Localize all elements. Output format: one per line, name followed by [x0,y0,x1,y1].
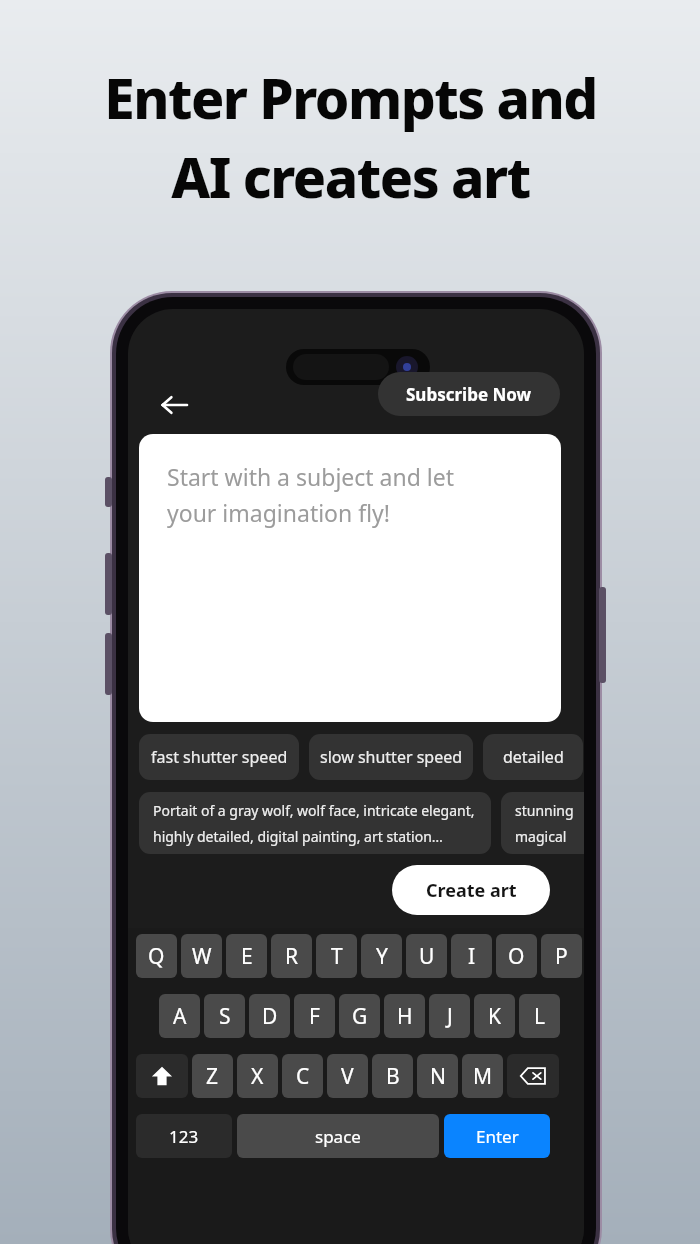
button[interactable]: I [451,934,492,978]
staticText: H [397,1002,413,1031]
staticText: B [386,1062,400,1091]
staticText: C [296,1062,310,1091]
button[interactable]: L [519,994,560,1038]
button[interactable]: Shift [136,1054,188,1098]
button[interactable]: A [159,994,200,1038]
staticText: V [341,1062,354,1091]
staticText: space [315,1125,361,1148]
button[interactable]: O [496,934,537,978]
button[interactable]: K [474,994,515,1038]
staticText: P [555,942,568,971]
staticText: highly detailed, digital painting, art s… [153,827,443,846]
button[interactable]: Y [361,934,402,978]
staticText: U [419,942,435,971]
button[interactable]: slow shutter speed [309,734,473,780]
button[interactable]: X [237,1054,278,1098]
staticText: G [352,1002,368,1031]
staticText: I [468,942,476,971]
staticText: Q [148,942,165,971]
button[interactable]: R [271,934,312,978]
button[interactable]: Subscribe Now [378,372,560,416]
button[interactable]: W [181,934,222,978]
staticText: T [331,942,343,971]
staticText: slow shutter speed [320,746,463,768]
button[interactable]: V [327,1054,368,1098]
staticText: Create art [426,878,517,903]
button[interactable]: C [282,1054,323,1098]
staticText: detailed [503,746,564,768]
button[interactable]: Create art [392,865,550,915]
staticText: A [173,1002,187,1031]
button[interactable]: M [462,1054,503,1098]
staticText: Enter [476,1125,519,1148]
button[interactable]: Start with a subject and let [139,434,561,722]
button[interactable]: Q [136,934,177,978]
staticText: N [430,1062,446,1091]
staticText: D [262,1002,278,1031]
staticText: J [447,1002,453,1031]
staticText: X [251,1062,264,1091]
button[interactable]: J [429,994,470,1038]
staticText: O [508,942,525,971]
button[interactable]: Portait of a gray wolf, wolf face, intri… [139,792,491,854]
button[interactable]: G [339,994,380,1038]
button[interactable]: N [417,1054,458,1098]
button[interactable]: Enter [444,1114,550,1158]
staticText: E [241,942,253,971]
staticText: W [192,942,212,971]
staticText: R [285,942,299,971]
staticText: Start with a subject and let [167,461,455,492]
button[interactable]: stunning [501,792,584,854]
button[interactable]: T [316,934,357,978]
button[interactable]: Z [192,1054,233,1098]
button[interactable]: U [406,934,447,978]
button[interactable]: B [372,1054,413,1098]
staticText: K [488,1002,501,1031]
staticText: fast shutter speed [151,746,288,768]
button[interactable]: D [249,994,290,1038]
button[interactable]: 123 [136,1114,232,1158]
button[interactable]: detailed [483,734,583,780]
button[interactable]: space [237,1114,439,1158]
staticText: 123 [169,1125,199,1148]
staticText: Portait of a gray wolf, wolf face, intri… [153,801,475,820]
button[interactable]: S [204,994,245,1038]
staticText: M [473,1062,493,1091]
staticText: Z [206,1062,219,1091]
staticText: Subscribe Now [406,383,532,406]
staticText: Enter Prompts and [104,60,597,135]
button[interactable]: E [226,934,267,978]
staticText: AI creates art [171,139,530,214]
staticText: F [309,1002,320,1031]
staticText: S [219,1002,231,1031]
button[interactable]: F [294,994,335,1038]
button[interactable]: fast shutter speed [139,734,299,780]
staticText: L [534,1002,546,1031]
staticText: your imagination fly! [167,497,390,528]
button[interactable]: H [384,994,425,1038]
button[interactable]: P [541,934,582,978]
button[interactable]: Backspace [507,1054,559,1098]
staticText: magical [515,827,567,846]
button[interactable]: Back [150,381,198,429]
staticText: stunning [515,801,574,820]
staticText: Y [376,942,388,971]
